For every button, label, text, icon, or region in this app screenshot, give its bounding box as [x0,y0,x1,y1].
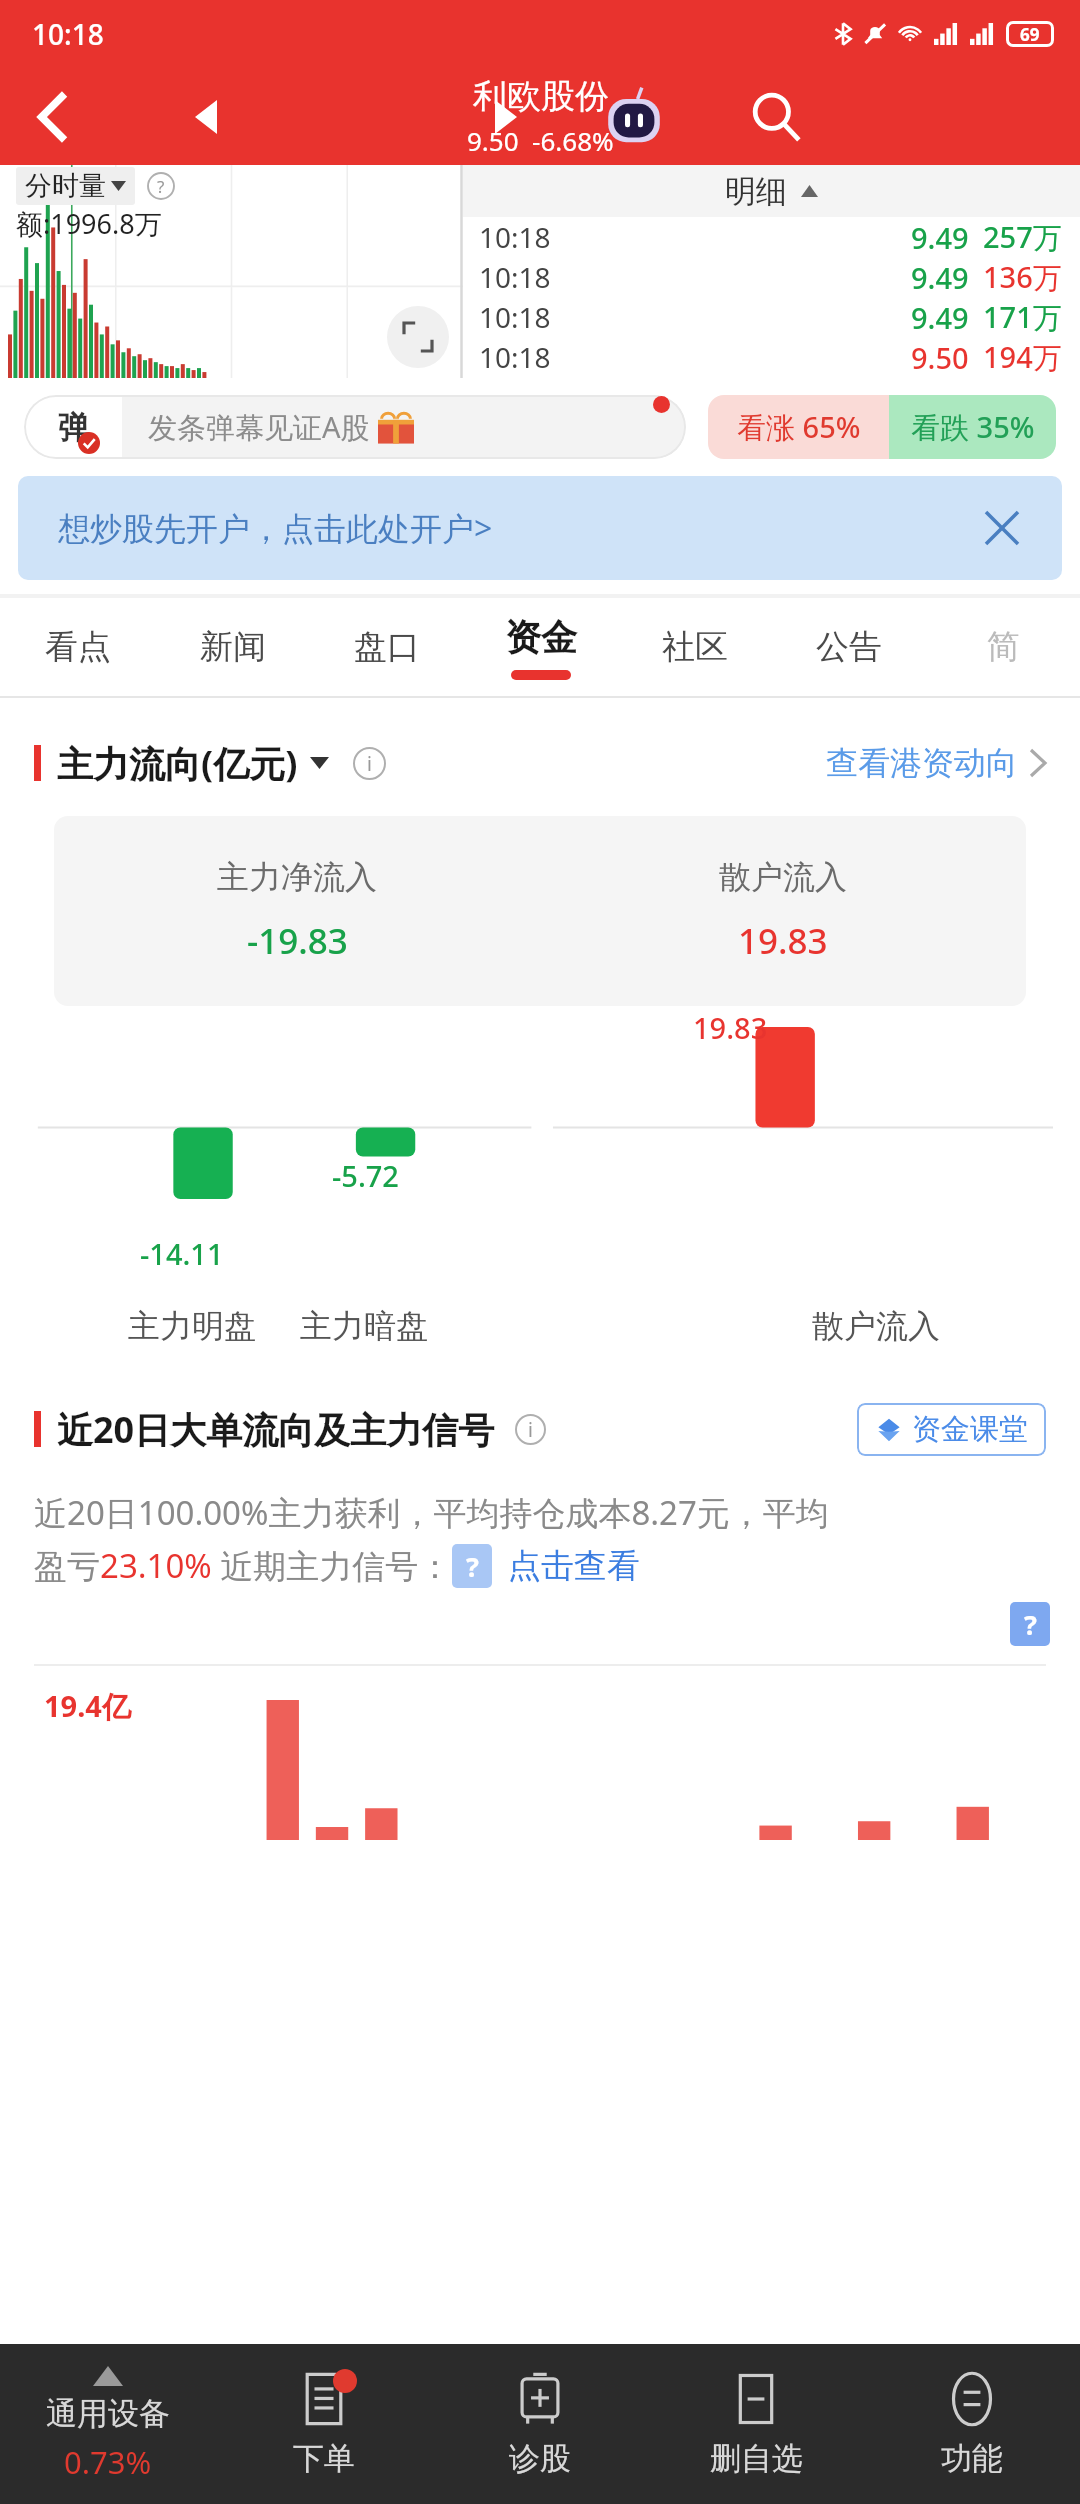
button[interactable]: Back [0,68,110,165]
button[interactable]: 看点 [0,598,155,696]
button[interactable]: 10:18 [463,257,1080,297]
staticText: 19.83 [738,917,828,965]
staticText: 136万 [983,257,1062,297]
staticText: 散户流入 [812,1306,940,1346]
staticText: 看跌 35% [911,407,1035,447]
staticText: 新闻 [200,626,266,668]
button[interactable]: Info [515,1414,546,1445]
staticText: 查看港资动向 [826,743,1018,783]
button[interactable]: 通用设备 [0,2344,216,2504]
staticText: 9.50 -6.68% [467,123,614,158]
staticText: 功能 [941,2439,1003,2478]
button[interactable]: 明细 [463,165,1080,217]
staticText: 社区 [662,626,728,668]
button[interactable]: 弹 [24,395,686,459]
button[interactable]: 10:18 [463,337,1080,377]
staticText: 10:18 [479,218,551,256]
staticText: 资金课堂 [912,1411,1028,1448]
staticText: 分时量 [25,169,106,203]
button[interactable]: 社区 [618,598,772,696]
button[interactable]: 诊股 [432,2344,648,2504]
button[interactable]: 看涨 65% [708,395,889,459]
staticText: 10:18 [479,338,551,376]
staticText: 散户流入 [719,857,847,897]
button[interactable]: 看跌 35% [889,395,1056,459]
staticText: 明细 [725,172,787,211]
button[interactable]: 想炒股先开户，点击此处开户> [18,476,1062,580]
button[interactable]: Help [1010,1602,1050,1646]
staticText: 想炒股先开户，点击此处开户> [58,506,493,550]
staticText: 0.73% [64,2441,152,2483]
staticText: 发条弹幕见证A股 [148,407,370,447]
staticText: 9.49 [911,298,969,337]
staticText: 194万 [983,337,1062,377]
staticText: 公告 [816,626,882,668]
button[interactable]: 下单 [216,2344,432,2504]
staticText: 弹 [58,408,89,447]
staticText: 9.49 [911,258,969,297]
button[interactable]: 删自选 [648,2344,864,2504]
staticText: 9.49 [911,218,969,257]
staticText: -14.11 [140,1234,224,1273]
staticText: 额:1996.8万 [16,205,162,242]
button[interactable]: 查看港资动向 [826,743,1046,783]
button[interactable]: 公告 [772,598,926,696]
staticText: 69 [1020,23,1040,46]
button[interactable]: Close [970,496,1034,560]
staticText: 盈亏23.10% 近期主力信号： [34,1543,452,1588]
staticText: i [528,1417,533,1443]
staticText: 诊股 [509,2439,571,2478]
staticText: 通用设备 [46,2394,170,2433]
staticText: 主力暗盘 [300,1306,428,1346]
staticText: 资金 [505,615,577,660]
button[interactable]: 10:18 [463,217,1080,257]
staticText: 257万 [983,217,1062,257]
staticText: 10:18 [32,15,104,53]
button[interactable]: 资金 [464,598,618,696]
staticText: 171万 [983,297,1062,337]
staticText: -5.72 [332,1156,399,1195]
button[interactable]: 分时量 [16,167,135,205]
button[interactable]: Fullscreen [387,306,449,368]
staticText: -19.83 [247,917,348,965]
staticText: 近20日100.00%主力获利，平均持仓成本8.27元，平均 [34,1490,829,1535]
staticText: 主力流向(亿元) [57,739,298,788]
button[interactable]: 盘口 [310,598,464,696]
staticText: 盘口 [354,626,420,668]
staticText: 删自选 [710,2439,803,2478]
staticText: 主力净流入 [217,857,377,897]
staticText: 近20日大单流向及主力信号 [57,1405,495,1454]
button[interactable]: Previous stock [166,68,246,165]
staticText: ? [1024,1606,1037,1643]
staticText: i [367,751,372,777]
staticText: 利欧股份 [473,75,609,118]
staticText: 看涨 65% [737,407,861,447]
button[interactable]: 10:18 [463,297,1080,337]
staticText: 简 [987,626,1020,668]
staticText: ? [157,175,165,198]
button[interactable]: 简 [926,598,1080,696]
button[interactable]: 点击查看 [508,1545,640,1587]
staticText: 19.83 [693,1008,768,1047]
staticText: 看点 [45,626,111,668]
staticText: 10:18 [479,258,551,296]
button[interactable]: 功能 [864,2344,1080,2504]
staticText: 10:18 [479,298,551,336]
staticText: 主力明盘 [128,1306,256,1346]
staticText: 下单 [293,2439,355,2478]
staticText: 19.4亿 [44,1686,131,1726]
button[interactable]: Next stock [468,68,544,165]
button[interactable]: Info [353,747,386,780]
staticText: 9.50 [911,338,969,377]
button[interactable]: Help [147,172,175,200]
button[interactable]: AI assistant [586,68,682,165]
button[interactable]: 资金课堂 [857,1403,1046,1456]
staticText: ? [466,1548,479,1585]
button[interactable]: Search [726,68,826,165]
button[interactable]: 新闻 [155,598,310,696]
